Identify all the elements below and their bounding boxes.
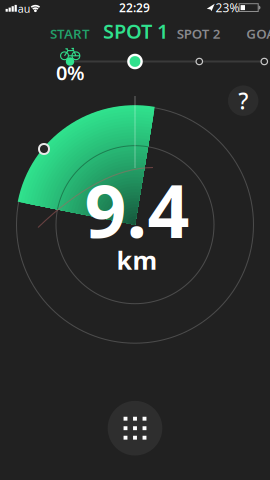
button[interactable]: SPOT 1 [103,18,168,44]
staticText: 9.4 [84,161,189,258]
staticText: SPOT 1 [103,18,168,44]
staticText: au [18,2,31,16]
staticText: ? [238,86,248,116]
button[interactable]: Help [228,85,258,116]
staticText: km [116,243,157,277]
staticText: START [50,25,90,42]
button[interactable]: SPOT 2 [177,25,221,42]
button[interactable]: Menu [107,400,163,456]
staticText: GOAL [246,25,270,42]
staticText: 0% [56,59,85,86]
button[interactable]: GOAL [246,25,270,42]
staticText: SPOT 2 [177,25,221,42]
staticText: 23% [215,0,239,15]
staticText: 22:29 [119,0,150,15]
button[interactable]: START [50,25,90,42]
